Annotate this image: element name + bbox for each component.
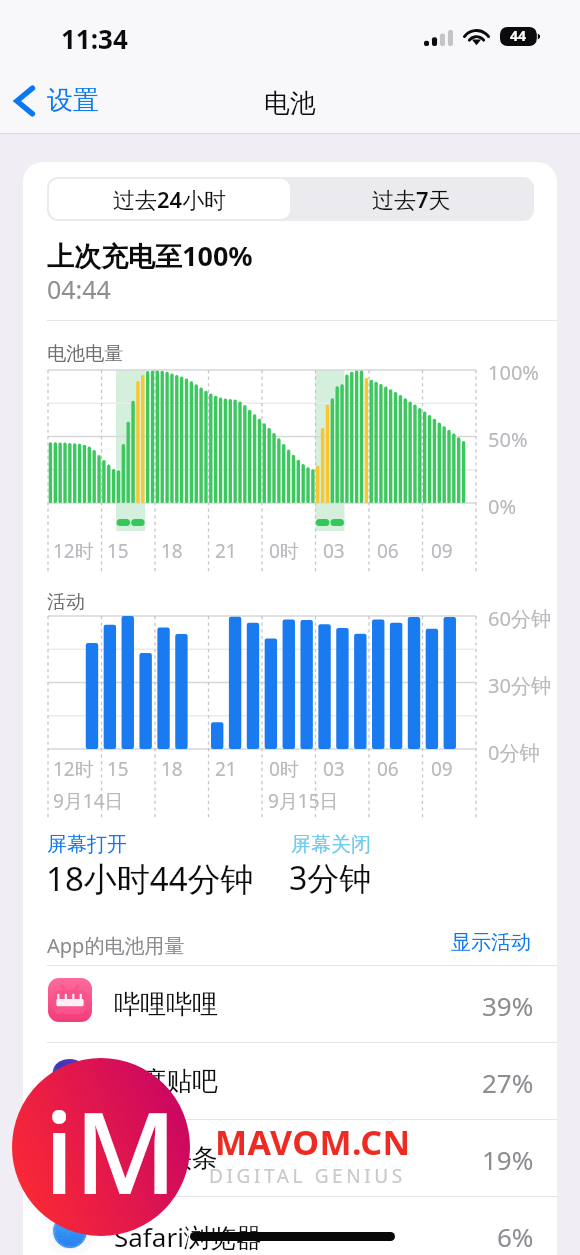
staticText: 09 (431, 538, 453, 564)
staticText: 3分钟 (289, 856, 372, 900)
staticText: 06 (377, 756, 399, 782)
staticText: 过去24小时 (113, 184, 227, 214)
staticText: 18 (161, 756, 183, 782)
staticText: 50% (488, 426, 528, 453)
staticText: 12时 (53, 756, 94, 782)
staticText: App的电池用量 (47, 932, 185, 959)
staticText: 0分钟 (488, 739, 540, 766)
staticText: 9月15日 (268, 788, 339, 814)
staticText: 27% (482, 1065, 534, 1100)
staticText: DIGITAL GENIUS (209, 1163, 406, 1189)
button[interactable]: 哔哩哔哩 (23, 965, 557, 1042)
staticText: 屏幕关闭 (291, 832, 371, 857)
staticText: 100% (488, 359, 539, 386)
staticText: 44 (510, 26, 527, 45)
staticText: 21 (215, 538, 237, 564)
staticText: 03 (323, 538, 345, 564)
staticText: 15 (107, 756, 129, 782)
button[interactable]: 过去7天 (290, 179, 532, 219)
button[interactable]: 今日头条 (23, 1119, 557, 1196)
other: Back (14, 85, 35, 117)
staticText: 哔哩哔哩 (114, 988, 218, 1021)
staticText: Safari浏览器 (114, 1219, 262, 1255)
staticText: 0时 (269, 538, 299, 564)
staticText: 9月14日 (53, 788, 124, 814)
staticText: 0% (488, 493, 517, 520)
staticText: 09 (431, 756, 453, 782)
staticText: 11:34 (61, 21, 128, 56)
button[interactable]: 过去24小时 (49, 179, 290, 219)
button[interactable]: 显示活动 (449, 926, 533, 958)
staticText: 过去7天 (372, 184, 451, 214)
staticText: 电池电量 (47, 342, 123, 366)
staticText: 06 (377, 538, 399, 564)
staticText: 电池 (264, 87, 316, 120)
staticText: 04:44 (47, 272, 111, 306)
staticText: 60分钟 (488, 605, 551, 632)
staticText: 12时 (53, 538, 94, 564)
staticText: 03 (323, 756, 345, 782)
staticText: 百度贴吧 (114, 1065, 218, 1098)
button[interactable]: 百度贴吧 (23, 1042, 557, 1119)
staticText: 屏幕打开 (47, 832, 127, 857)
staticText: 30分钟 (488, 672, 551, 699)
staticText: iM (44, 1074, 178, 1227)
staticText: 15 (107, 538, 129, 564)
staticText: 0时 (269, 756, 299, 782)
staticText: 上次充电至100% (47, 237, 253, 274)
staticText: 39% (482, 988, 534, 1023)
staticText: 18小时44分钟 (46, 856, 254, 901)
staticText: 21 (215, 756, 237, 782)
staticText: 今日头条 (114, 1142, 218, 1175)
staticText: 活动 (47, 590, 85, 614)
staticText: MAVOM.CN (215, 1119, 411, 1165)
staticText: 18 (161, 538, 183, 564)
staticText: 显示活动 (451, 930, 531, 955)
staticText: 设置 (47, 84, 99, 117)
staticText: 19% (482, 1142, 534, 1177)
button[interactable]: Back (10, 82, 105, 119)
staticText: 6% (497, 1219, 534, 1254)
button[interactable]: Safari浏览器 (23, 1196, 557, 1255)
